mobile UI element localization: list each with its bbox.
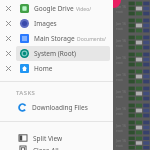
staticText: Documents/ <box>77 36 106 43</box>
button[interactable]: Close All <box>0 146 113 150</box>
staticText: Jan 16 <box>116 38 126 43</box>
staticText: root <box>116 9 123 14</box>
button[interactable]: Main Storage <box>0 31 113 46</box>
staticText: Jan 16 <box>116 106 126 111</box>
staticText: Jan 16 <box>116 4 126 9</box>
staticText: root <box>116 143 123 148</box>
button[interactable]: System (Root) <box>0 46 113 61</box>
staticText: root <box>116 94 123 99</box>
staticText: Main Storage <box>34 34 75 43</box>
staticText: Images <box>34 19 57 28</box>
staticText: Home <box>34 64 53 73</box>
staticText: Downloading Files <box>32 103 88 112</box>
staticText: root <box>116 43 123 48</box>
staticText: Split View <box>33 134 63 143</box>
staticText: root <box>116 111 123 116</box>
button[interactable]: Images <box>0 16 113 31</box>
staticText: Video/ <box>76 6 92 13</box>
button[interactable]: Add <box>106 0 121 8</box>
staticText: TASKS <box>16 89 36 97</box>
staticText: root <box>116 60 123 65</box>
staticText: Google Drive <box>34 4 74 13</box>
staticText: root <box>116 26 123 31</box>
staticText: Jan 16 <box>116 72 126 77</box>
staticText: root <box>116 77 123 82</box>
staticText: Jan 16 <box>116 138 126 143</box>
button[interactable]: Google Drive <box>0 1 113 16</box>
staticText: System (Root) <box>34 49 76 58</box>
button[interactable]: Downloading Files <box>0 100 113 114</box>
button[interactable]: Split View <box>0 130 113 146</box>
staticText: Close All <box>33 146 59 150</box>
staticText: Jan 16 <box>116 21 126 26</box>
staticText: Jan 16 <box>116 55 126 60</box>
staticText: root <box>116 128 123 133</box>
staticText: Jan 16 <box>116 123 126 128</box>
staticText: Jan 16 <box>116 89 126 94</box>
button[interactable]: Home <box>0 61 113 76</box>
